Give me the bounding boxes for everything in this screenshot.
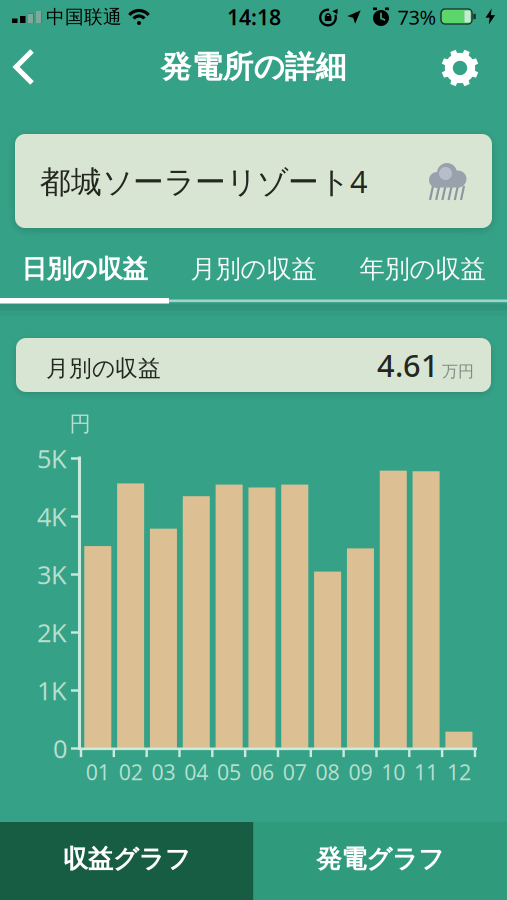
button[interactable]: 月別の収益 xyxy=(169,243,338,295)
staticText: 月別の収益 xyxy=(190,253,316,284)
staticText: 09 xyxy=(348,758,372,786)
staticText: 月別の収益 xyxy=(46,354,161,382)
staticText: 発電所の詳細 xyxy=(160,48,346,86)
button[interactable]: 年別の収益 xyxy=(338,243,507,295)
staticText: 02 xyxy=(119,758,143,786)
staticText: 中国联通 xyxy=(46,5,122,28)
staticText: 10 xyxy=(381,758,405,786)
staticText: 1K xyxy=(37,674,67,707)
staticText: 3K xyxy=(37,558,67,591)
staticText: 4K xyxy=(37,500,67,533)
staticText: 06 xyxy=(250,758,274,786)
staticText: 万円 xyxy=(442,362,474,381)
button[interactable]: 日別の収益 xyxy=(0,243,169,295)
staticText: 発電グラフ xyxy=(316,843,444,874)
staticText: 年別の収益 xyxy=(359,253,485,284)
button[interactable]: 収益グラフ xyxy=(0,822,253,900)
staticText: 円 xyxy=(69,411,90,437)
staticText: 08 xyxy=(316,758,340,786)
staticText: 73% xyxy=(397,4,436,30)
staticText: 都城ソーラーリゾート4 xyxy=(40,161,368,201)
staticText: 0 xyxy=(53,732,67,765)
button[interactable]: 発電グラフ xyxy=(253,822,507,900)
staticText: 05 xyxy=(217,758,241,786)
staticText: 14:18 xyxy=(227,3,281,31)
staticText: 2K xyxy=(37,616,67,649)
staticText: 収益グラフ xyxy=(63,843,191,874)
staticText: 12 xyxy=(447,758,471,786)
staticText: 01 xyxy=(86,758,110,786)
staticText: 4.61 xyxy=(377,345,439,385)
staticText: 04 xyxy=(184,758,208,786)
staticText: 日別の収益 xyxy=(21,253,147,284)
staticText: 11 xyxy=(414,758,438,786)
button[interactable]: Back xyxy=(8,46,42,88)
button[interactable]: 都城ソーラーリゾート4 xyxy=(15,134,492,228)
staticText: 5K xyxy=(37,442,67,475)
button[interactable]: Settings xyxy=(440,48,480,88)
staticText: 07 xyxy=(283,758,307,786)
staticText: 03 xyxy=(151,758,175,786)
